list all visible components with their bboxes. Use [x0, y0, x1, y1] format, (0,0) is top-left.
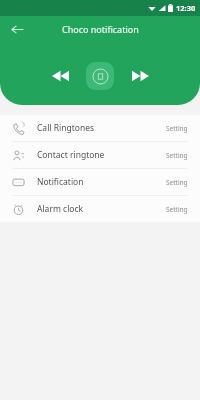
staticText: Call Ringtones: [37, 122, 166, 134]
staticText: Choco notification: [62, 23, 139, 35]
button[interactable]: Notification: [0, 169, 200, 196]
button[interactable]: Play: [86, 62, 114, 90]
staticText: Notification: [37, 176, 166, 188]
button[interactable]: Next: [127, 63, 153, 89]
staticText: Alarm clock: [37, 203, 166, 215]
staticText: Setting: [166, 124, 188, 133]
staticText: Contact ringtone: [37, 149, 166, 161]
button[interactable]: Contact ringtone: [0, 142, 200, 169]
button[interactable]: Alarm clock: [0, 196, 200, 222]
button[interactable]: Previous: [47, 63, 73, 89]
button[interactable]: Back: [7, 19, 27, 39]
button[interactable]: Call Ringtones: [0, 115, 200, 142]
staticText: Setting: [166, 151, 188, 160]
staticText: Setting: [166, 178, 188, 187]
staticText: 12:30: [176, 3, 196, 13]
staticText: Setting: [166, 205, 188, 214]
